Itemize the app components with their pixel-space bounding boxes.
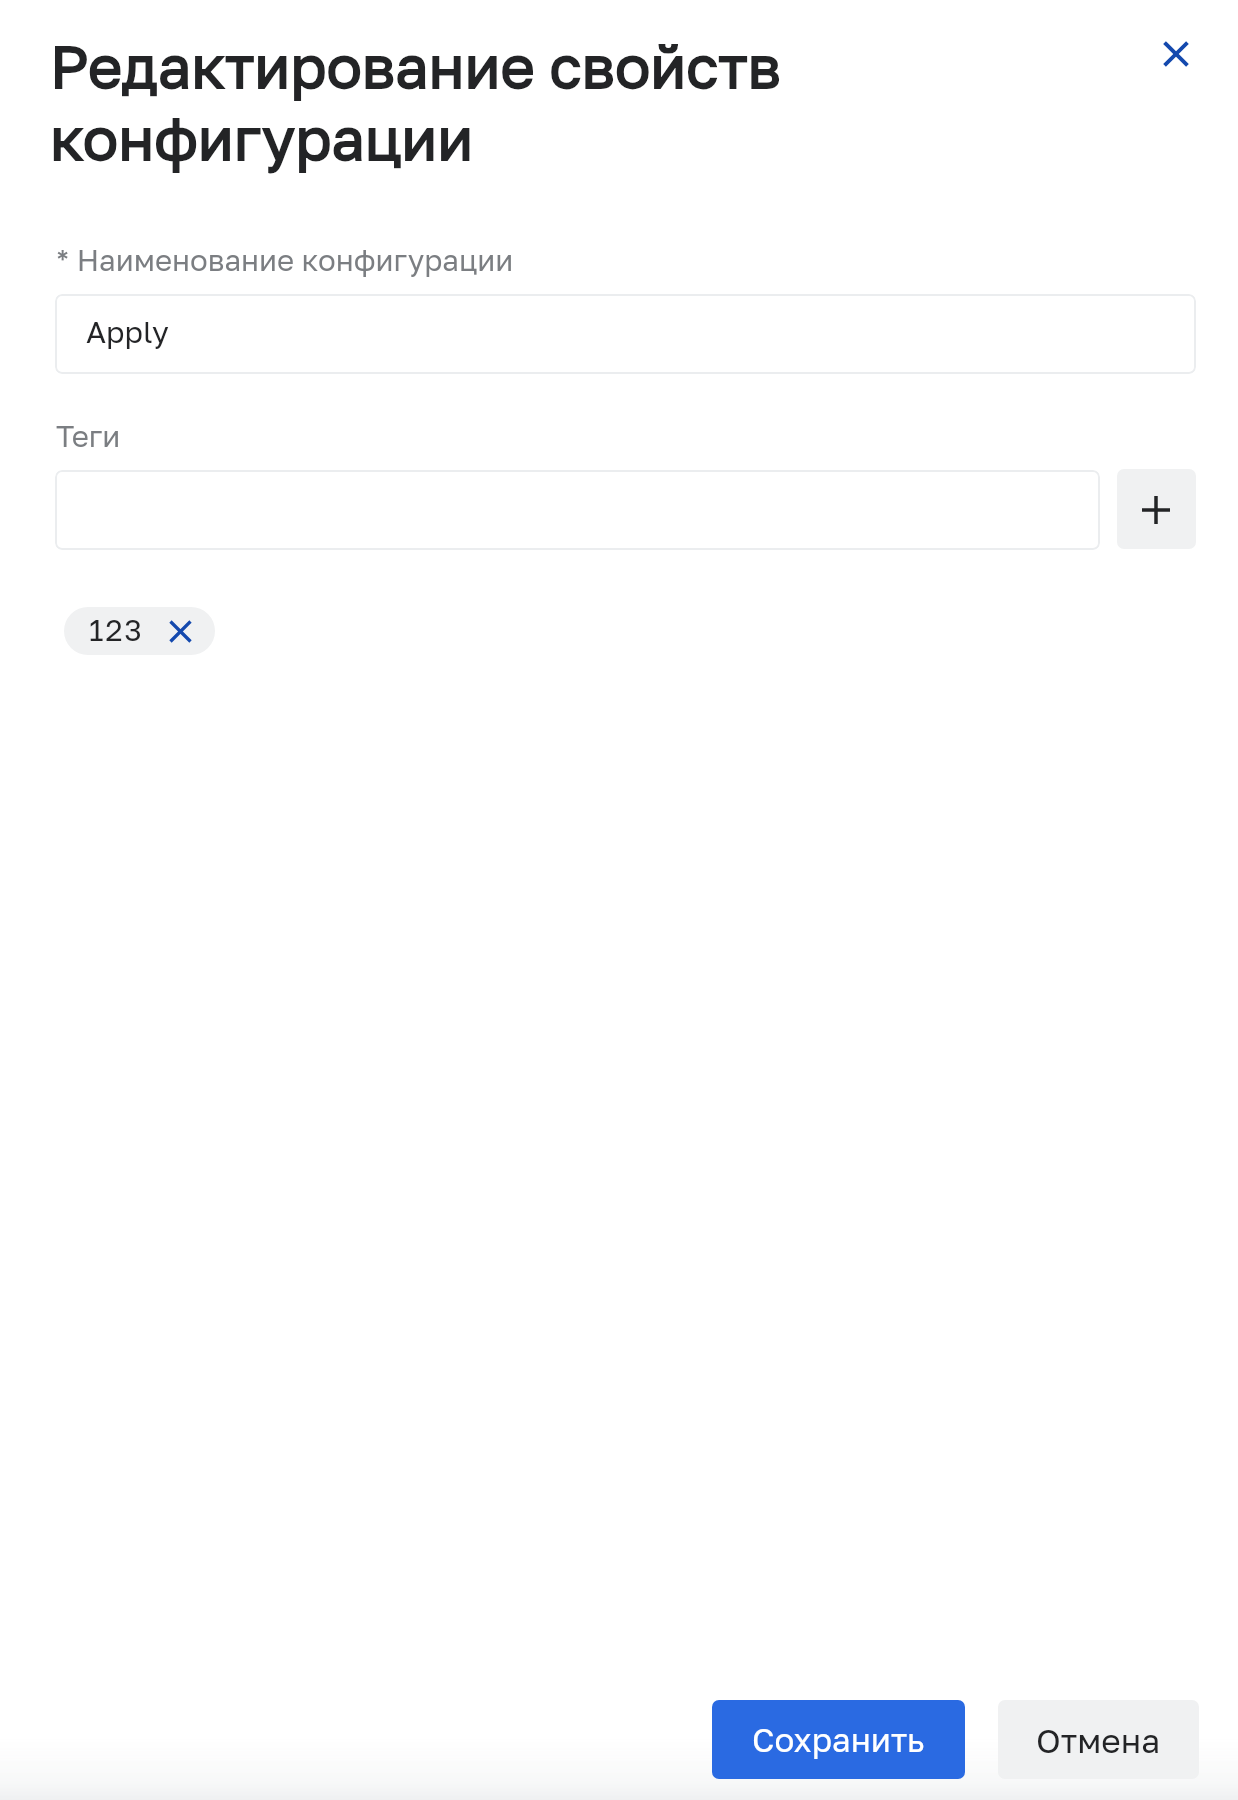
staticText: Редактирование свойств конфигурации	[50, 30, 781, 173]
staticText: * Наименование конфигурации	[56, 242, 514, 277]
staticText: Сохранить	[752, 1720, 925, 1760]
button[interactable]: Поле ввода тега	[55, 470, 1100, 550]
button[interactable]: Apply	[55, 294, 1196, 374]
staticText: Теги	[56, 418, 121, 453]
button[interactable]: 123	[64, 607, 215, 655]
staticText: Отмена	[1036, 1720, 1161, 1760]
button[interactable]: Закрыть	[1144, 22, 1208, 86]
button[interactable]: Отмена	[998, 1700, 1199, 1779]
button[interactable]: Добавить тег	[1117, 469, 1196, 549]
button[interactable]: Сохранить	[712, 1700, 965, 1779]
staticText: Apply	[86, 314, 169, 350]
staticText: 123	[89, 612, 144, 648]
